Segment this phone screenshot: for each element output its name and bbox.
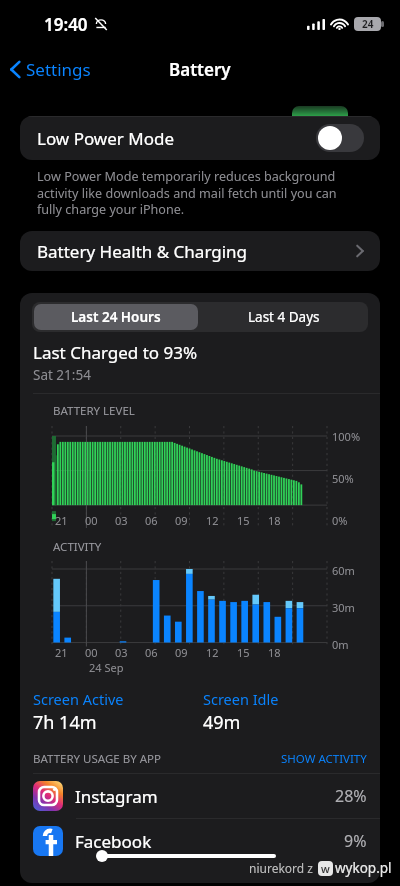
staticText: 00	[85, 645, 98, 660]
staticText: wykop.pl	[335, 859, 392, 877]
staticText: 60m	[332, 563, 355, 578]
staticText: 24	[362, 17, 374, 31]
staticText: Settings	[26, 58, 91, 81]
button[interactable]: Low Power Mode	[20, 116, 380, 160]
button[interactable]: Last 24 Hours	[34, 304, 198, 330]
button[interactable]: Battery Health & Charging	[20, 231, 380, 271]
staticText: Low Power Mode temporarily reduces backg…	[37, 168, 363, 217]
staticText: 28%	[335, 785, 367, 807]
button[interactable]: Last 4 Days	[200, 302, 368, 332]
button[interactable]: SHOW ACTIVITY	[281, 751, 367, 767]
staticText: Screen Idle	[203, 689, 279, 709]
staticText: Sat 21:54	[33, 366, 91, 384]
staticText: Facebook	[75, 830, 152, 853]
staticText: 18	[268, 513, 281, 528]
button[interactable]: Facebook	[20, 819, 380, 863]
staticText: Battery Health & Charging	[37, 240, 248, 263]
staticText: 49m	[203, 710, 241, 735]
staticText: Battery	[169, 58, 231, 81]
staticText: 0%	[332, 513, 348, 528]
staticText: BATTERY LEVEL	[53, 403, 135, 419]
staticText: 100%	[332, 429, 361, 444]
staticText: ACTIVITY	[53, 539, 102, 555]
staticText: 00	[85, 513, 98, 528]
staticText: 06	[145, 513, 158, 528]
staticText: 18	[268, 645, 281, 660]
staticText: Instagram	[75, 785, 158, 808]
staticText: 21	[55, 513, 68, 528]
staticText: 0m	[332, 637, 349, 652]
staticText: 03	[115, 513, 128, 528]
staticText: SHOW ACTIVITY	[281, 751, 367, 767]
staticText: Screen Active	[33, 689, 124, 709]
staticText: BATTERY USAGE BY APP	[33, 751, 161, 767]
staticText: 15	[237, 645, 250, 660]
staticText: 24 Sep	[89, 660, 124, 675]
staticText: 09	[175, 645, 188, 660]
staticText: 30m	[332, 600, 355, 615]
staticText: 15	[237, 513, 250, 528]
staticText: 06	[145, 645, 158, 660]
staticText: 12	[206, 513, 219, 528]
staticText: 19:40	[44, 13, 88, 36]
staticText: 9%	[344, 830, 367, 852]
staticText: Last Charged to 93%	[33, 341, 198, 364]
staticText: niurekord z	[249, 860, 313, 876]
staticText: Last 4 Days	[248, 308, 320, 326]
staticText: W	[321, 863, 330, 875]
button[interactable]: Settings	[0, 52, 99, 87]
staticText: 03	[115, 645, 128, 660]
staticText: 21	[55, 645, 68, 660]
staticText: Last 24 Hours	[71, 308, 161, 326]
staticText: 50%	[332, 471, 354, 486]
staticText: Low Power Mode	[37, 127, 175, 150]
staticText: 09	[175, 513, 188, 528]
staticText: 7h 14m	[33, 710, 97, 735]
staticText: 12	[206, 645, 219, 660]
button[interactable]: Instagram	[20, 774, 380, 818]
